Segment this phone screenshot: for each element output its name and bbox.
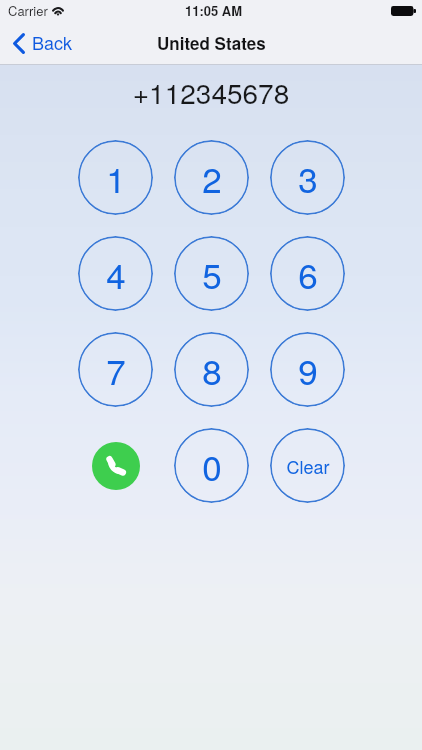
button[interactable]: 6 — [270, 236, 345, 311]
staticText: Clear — [286, 453, 330, 479]
button[interactable]: Clear — [270, 428, 345, 503]
button[interactable]: 4 — [78, 236, 153, 311]
staticText: 1 — [106, 153, 126, 203]
button[interactable]: 8 — [174, 332, 249, 407]
staticText: 4 — [106, 249, 126, 299]
staticText: 3 — [298, 153, 318, 203]
button[interactable]: 3 — [270, 140, 345, 215]
button[interactable]: 9 — [270, 332, 345, 407]
button[interactable]: 0 — [174, 428, 249, 503]
button[interactable]: 5 — [174, 236, 249, 311]
staticText: 0 — [202, 441, 222, 491]
staticText: 7 — [106, 345, 126, 395]
staticText: 5 — [202, 249, 222, 299]
staticText: 11:05 AM — [185, 1, 243, 20]
staticText: Carrier — [8, 1, 48, 20]
button[interactable]: 7 — [78, 332, 153, 407]
staticText: Back — [32, 29, 73, 55]
staticText: 8 — [202, 345, 222, 395]
button[interactable]: Back — [0, 25, 85, 61]
staticText: 6 — [298, 249, 318, 299]
staticText: +112345678 — [0, 72, 422, 112]
button[interactable]: 2 — [174, 140, 249, 215]
staticText: 9 — [298, 345, 318, 395]
button[interactable]: Call — [92, 442, 140, 490]
staticText: United States — [157, 31, 266, 55]
button[interactable]: 1 — [78, 140, 153, 215]
staticText: 2 — [202, 153, 222, 203]
